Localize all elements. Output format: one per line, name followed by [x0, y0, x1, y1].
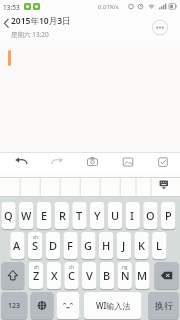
staticText: N — [121, 268, 130, 283]
button[interactable]: S — [28, 232, 42, 259]
button[interactable]: H — [99, 232, 113, 259]
button[interactable]: M — [135, 262, 149, 289]
staticText: P — [165, 208, 172, 223]
button[interactable] — [45, 154, 69, 170]
staticText: 0.01K/s — [98, 3, 119, 11]
button[interactable]: V — [82, 262, 96, 289]
staticText: U — [111, 208, 120, 223]
button[interactable]: O — [143, 202, 157, 229]
button[interactable]: Z — [29, 262, 43, 289]
staticText: G — [84, 238, 92, 253]
staticText: A — [13, 238, 21, 253]
staticText: 2015年10月3日 — [11, 15, 71, 27]
staticText: 星期六 13:20 — [11, 30, 49, 39]
staticText: sh — [33, 234, 38, 240]
staticText: S — [32, 238, 39, 253]
staticText: D — [49, 238, 58, 253]
button[interactable]: E — [37, 202, 51, 229]
staticText: B — [103, 268, 111, 283]
button[interactable]: Q — [1, 202, 15, 229]
staticText: M — [137, 268, 148, 283]
staticText: E — [41, 208, 48, 223]
button[interactable]: A — [10, 232, 24, 259]
button[interactable]: N — [118, 262, 132, 289]
button[interactable]: K — [134, 232, 148, 259]
button[interactable]: B — [100, 262, 114, 289]
button[interactable] — [80, 154, 104, 170]
staticText: zh — [34, 264, 39, 270]
staticText: 123 — [8, 301, 21, 311]
staticText: X — [51, 268, 58, 283]
button[interactable]: 2015年10月3日 — [11, 14, 91, 28]
staticText: F — [67, 238, 73, 253]
staticText: Z — [33, 268, 40, 283]
button[interactable]: P — [161, 202, 175, 229]
button[interactable]: F — [63, 232, 77, 259]
staticText: W — [21, 208, 32, 223]
button[interactable] — [31, 292, 54, 319]
button[interactable]: L — [152, 232, 166, 259]
button[interactable]: W — [19, 202, 33, 229]
staticText: Q — [4, 208, 13, 223]
button[interactable] — [116, 154, 140, 170]
button[interactable] — [155, 262, 179, 289]
staticText: O — [146, 208, 155, 223]
button[interactable]: T — [72, 202, 86, 229]
button[interactable]: U — [108, 202, 122, 229]
button[interactable] — [1, 17, 12, 30]
button[interactable]: I — [125, 202, 139, 229]
staticText: L — [156, 238, 162, 253]
button[interactable] — [1, 262, 24, 289]
button[interactable] — [152, 20, 168, 36]
button[interactable] — [151, 177, 180, 197]
button[interactable]: R — [55, 202, 69, 229]
button[interactable]: Y — [90, 202, 104, 229]
staticText: T — [76, 208, 83, 223]
staticText: C — [68, 268, 75, 283]
button[interactable]: C — [64, 262, 78, 289]
staticText: I — [130, 208, 134, 223]
staticText: Y — [94, 208, 101, 223]
staticText: WI输入法 — [96, 300, 131, 311]
staticText: ch — [69, 264, 74, 270]
staticText: H — [102, 238, 111, 253]
button[interactable] — [10, 154, 34, 170]
button[interactable] — [151, 154, 175, 170]
button[interactable]: 换行 — [148, 292, 179, 319]
staticText: V — [86, 268, 93, 283]
button[interactable]: D — [46, 232, 60, 259]
staticText: R — [59, 208, 66, 223]
button[interactable]: 123 — [1, 292, 27, 319]
staticText: 13:53 — [3, 3, 20, 12]
button[interactable] — [57, 292, 80, 319]
button[interactable]: WI输入法 — [84, 292, 142, 319]
button[interactable]: G — [81, 232, 95, 259]
button[interactable]: X — [47, 262, 61, 289]
staticText: J — [122, 238, 126, 253]
button[interactable]: J — [117, 232, 131, 259]
staticText: ng — [122, 264, 128, 270]
staticText: K — [138, 238, 145, 253]
staticText: 换行 — [155, 300, 173, 311]
